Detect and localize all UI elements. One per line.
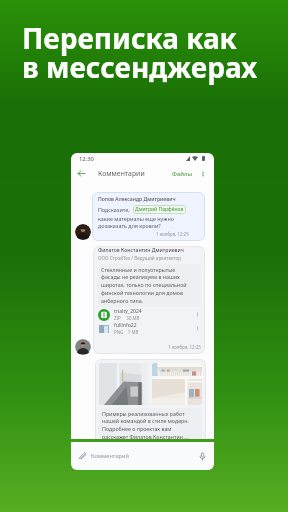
button[interactable]: fullinfo22 (98, 322, 201, 335)
staticText: 1 ноября, 12:25 (168, 344, 201, 350)
staticText: Примеры реализованных работ нашей команд… (102, 410, 189, 439)
button[interactable]: Back (77, 169, 86, 178)
staticText: Подсказите, (98, 206, 130, 213)
staticText: Стеклянные и полуоткрытые фасады не реал… (101, 266, 187, 305)
staticText: Попов Александр Дмитриевич (98, 196, 176, 203)
staticText: Дмитрий Парфёнов (135, 206, 184, 213)
staticText: 12:30 (79, 155, 94, 163)
staticText: какие материалы еще нужно дозаказать для… (98, 215, 174, 229)
button[interactable]: Attach file (71, 442, 214, 470)
staticText: Комментарий (91, 452, 129, 460)
staticText: Комментарии (98, 169, 145, 178)
button[interactable]: Photo 2 (152, 363, 202, 405)
button[interactable]: Дмитрий Парфёнов (133, 205, 186, 214)
button[interactable]: File options (194, 325, 201, 332)
staticText: ZIP 30 MB (114, 315, 140, 321)
button[interactable]: Avatar (75, 339, 91, 355)
button[interactable]: Филатов Константин Дмитриевич (93, 246, 205, 354)
button[interactable]: More options (199, 170, 207, 178)
staticText: fullinfo22 (114, 322, 137, 329)
other: Voice message (198, 452, 207, 461)
staticText: Филатов Константин Дмитриевич (98, 247, 184, 254)
staticText: ООО СтройТех / Ведущий архитектор (98, 255, 181, 261)
button[interactable]: Попов Александр Дмитриевич (92, 192, 205, 241)
staticText: 1 ноября, 12:25 (156, 231, 189, 237)
button[interactable]: Avatar (75, 224, 91, 240)
other: Attach file (78, 452, 87, 461)
button[interactable]: Photo 1 (99, 363, 148, 405)
staticText: PNG 1 MB (114, 329, 139, 335)
button[interactable]: File options (194, 311, 201, 318)
button[interactable]: trialty_2024 (98, 308, 201, 321)
button[interactable]: Файлы (171, 168, 194, 180)
staticText: Файлы (172, 170, 193, 178)
staticText: trialty_2024 (114, 308, 142, 315)
staticText: Переписка как в мессенджерах (22, 19, 258, 86)
button[interactable]: Photo 1 (95, 359, 206, 439)
